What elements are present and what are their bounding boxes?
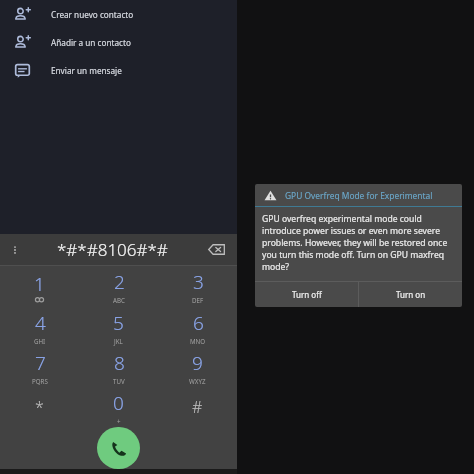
button[interactable]: 8 [79,347,158,387]
staticText: Crear nuevo contacto [51,9,134,20]
staticText: ABC [113,296,125,304]
staticText: 3 [193,269,204,295]
staticText: GPU Overfreq Mode for Experimental [285,190,433,201]
staticText: + [117,417,121,425]
button[interactable]: 0 [79,387,158,427]
button[interactable]: Backspace [195,234,237,265]
button[interactable]: 5 [79,307,158,347]
staticText: GHI [34,337,46,345]
staticText: Añadir a un contacto [51,37,131,48]
staticText: * [35,396,44,418]
button[interactable]: 1 [0,266,79,307]
button[interactable]: Call [97,427,140,469]
staticText: MNO [190,337,206,345]
staticText: Turn off [292,289,322,300]
button[interactable]: 6 [158,307,237,347]
staticText: 6 [193,310,204,336]
staticText: 4 [35,310,46,336]
staticText: 5 [113,310,124,336]
staticText: 9 [192,350,203,376]
staticText: Enviar un mensaje [51,65,122,76]
staticText: TUV [113,377,125,385]
button[interactable]: Crear nuevo contacto [0,0,237,28]
staticText: 8 [114,350,125,376]
button[interactable]: Añadir a un contacto [0,28,237,56]
staticText: # [192,396,203,418]
button[interactable]: Turn off [255,282,358,307]
button[interactable]: 3 [158,266,237,307]
button[interactable]: Enviar un mensaje [0,56,237,84]
button[interactable]: 4 [0,307,79,347]
button[interactable]: # [158,387,237,427]
button[interactable]: 2 [79,266,158,307]
button[interactable]: * [0,387,79,427]
button[interactable]: 9 [158,347,237,387]
staticText: 2 [114,269,125,295]
staticText: 0 [113,390,124,416]
button[interactable]: 7 [0,347,79,387]
button[interactable]: More options [0,234,30,265]
staticText: 7 [35,350,46,376]
staticText: Turn on [396,289,426,300]
staticText: WXYZ [189,377,206,385]
button[interactable]: Turn on [359,282,462,307]
staticText: GPU overfreq experimental mode could int… [262,213,455,273]
staticText: 1 [34,271,45,297]
staticText: PQRS [32,377,48,385]
staticText: *#*#8106#*# [57,238,168,261]
staticText: JKL [114,337,123,345]
staticText: DEF [192,296,204,304]
